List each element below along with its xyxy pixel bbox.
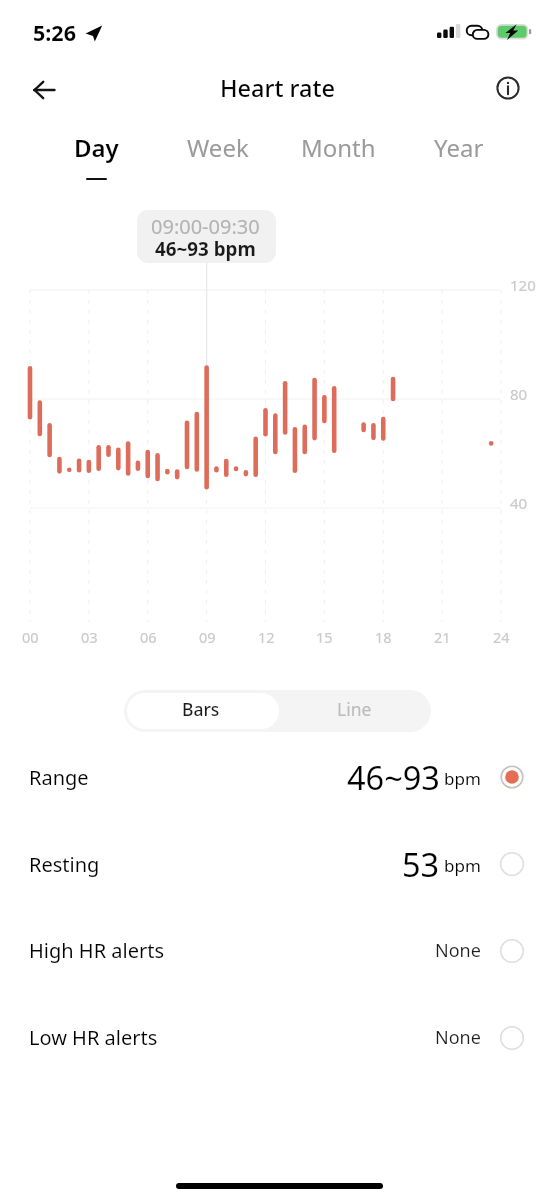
button[interactable]: Bars xyxy=(127,693,279,729)
staticText: 15 xyxy=(316,627,333,647)
staticText: Line xyxy=(337,697,372,721)
staticText: Year xyxy=(434,131,484,164)
staticText: 46~93 bpm xyxy=(155,236,256,262)
staticText: bpm xyxy=(444,854,481,877)
button[interactable]: Year xyxy=(401,131,517,193)
button[interactable]: Info xyxy=(484,64,532,112)
staticText: Bars xyxy=(182,697,220,721)
button[interactable]: Low HR alerts xyxy=(0,994,554,1080)
staticText: 03 xyxy=(81,627,98,647)
button[interactable]: Line xyxy=(279,690,431,732)
staticText: 21 xyxy=(434,627,451,647)
button[interactable]: Week xyxy=(160,131,276,193)
staticText: Range xyxy=(29,764,89,791)
staticText: 00 xyxy=(22,627,39,647)
staticText: Heart rate xyxy=(220,72,335,104)
staticText: High HR alerts xyxy=(29,937,165,964)
button[interactable]: Month xyxy=(280,131,396,193)
staticText: Month xyxy=(301,131,376,164)
staticText: None xyxy=(435,938,481,963)
staticText: 120 xyxy=(510,275,536,295)
staticText: Low HR alerts xyxy=(29,1024,158,1051)
staticText: 46~93 xyxy=(347,755,440,799)
button[interactable]: Day xyxy=(38,131,154,193)
staticText: 40 xyxy=(510,493,528,513)
staticText: 80 xyxy=(510,384,528,404)
button[interactable]: Back xyxy=(20,66,68,114)
staticText: 09 xyxy=(199,627,216,647)
staticText: 09:00-09:30 xyxy=(151,213,260,240)
button[interactable]: Range xyxy=(0,734,554,820)
staticText: 18 xyxy=(375,627,392,647)
staticText: Resting xyxy=(29,851,100,878)
staticText: 06 xyxy=(140,627,157,647)
staticText: Day xyxy=(74,131,119,164)
staticText: Week xyxy=(187,131,249,164)
staticText: 53 xyxy=(402,842,440,886)
staticText: bpm xyxy=(444,767,481,790)
button[interactable]: Resting xyxy=(0,821,554,907)
staticText: 12 xyxy=(258,627,275,647)
button[interactable]: High HR alerts xyxy=(0,907,554,993)
staticText: 24 xyxy=(493,627,510,647)
staticText: None xyxy=(435,1025,481,1050)
staticText: 5:26 xyxy=(33,18,76,47)
